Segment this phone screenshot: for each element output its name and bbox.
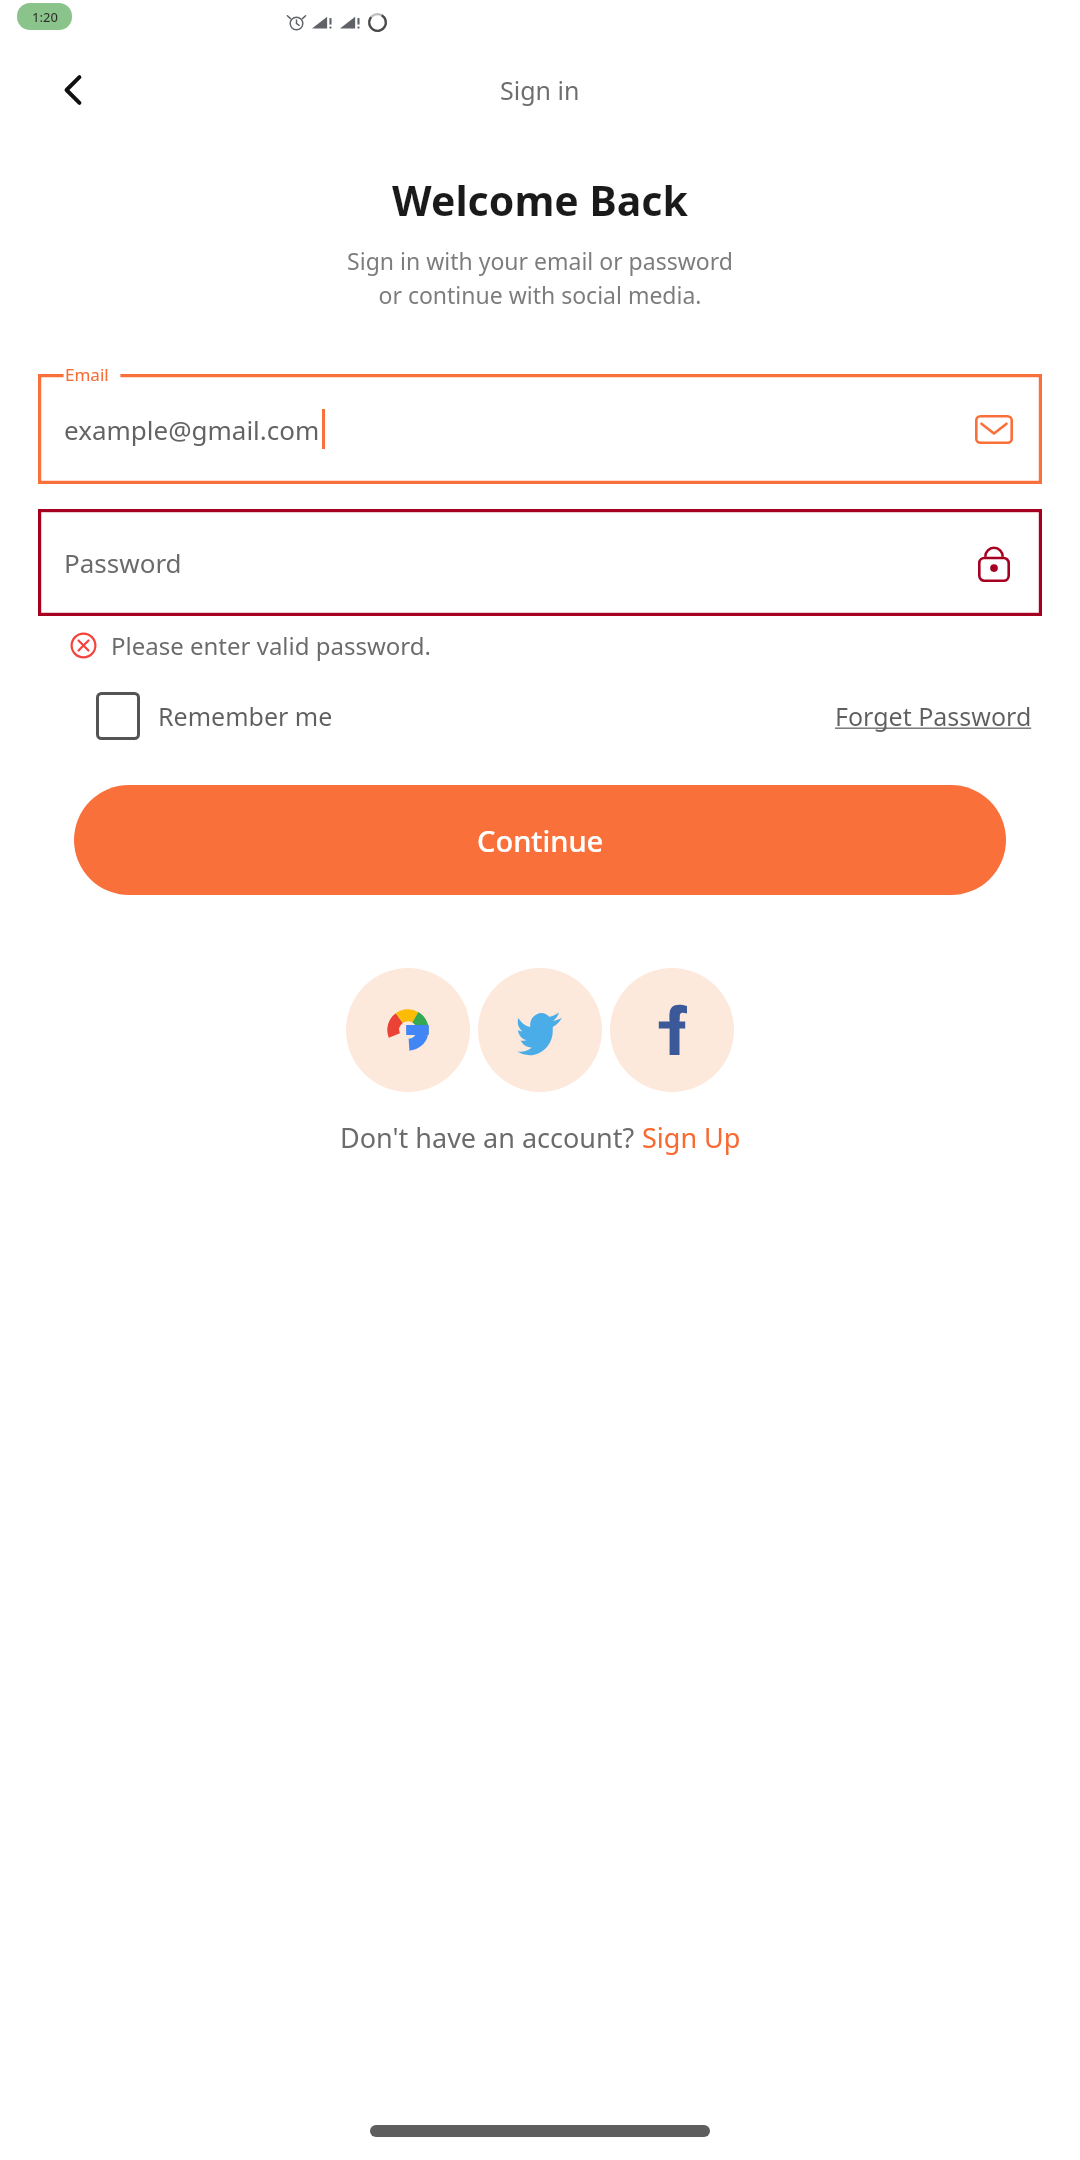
- button[interactable]: Back: [44, 60, 104, 120]
- staticText: Password: [64, 545, 182, 580]
- staticText: Don't have an account?: [340, 1119, 642, 1156]
- button[interactable]: Password: [38, 509, 1042, 616]
- staticText: Sign Up: [642, 1119, 741, 1156]
- button[interactable]: Sign Up: [642, 1119, 741, 1156]
- button[interactable]: Email: [38, 374, 1042, 484]
- button[interactable]: Remember me: [96, 692, 333, 740]
- staticText: Email: [65, 363, 109, 386]
- staticText: Sign in: [500, 73, 580, 107]
- other: Password: [972, 541, 1016, 585]
- staticText: Continue: [477, 821, 604, 860]
- staticText: Remember me: [158, 699, 333, 733]
- button[interactable]: Continue: [74, 785, 1006, 895]
- staticText: Welcome Back: [392, 172, 688, 228]
- button[interactable]: Sign in with Twitter: [478, 968, 602, 1092]
- staticText: example@gmail.com: [64, 412, 320, 447]
- button[interactable]: Forget Password: [835, 699, 1032, 733]
- staticText: Sign in with your email or password or c…: [347, 245, 733, 310]
- button[interactable]: Sign in with Google: [346, 968, 470, 1092]
- staticText: Please enter valid password.: [111, 629, 431, 662]
- button[interactable]: Sign in with Facebook: [610, 968, 734, 1092]
- other: Email: [972, 407, 1016, 451]
- staticText: 1:20: [32, 8, 58, 26]
- staticText: Forget Password: [835, 699, 1032, 733]
